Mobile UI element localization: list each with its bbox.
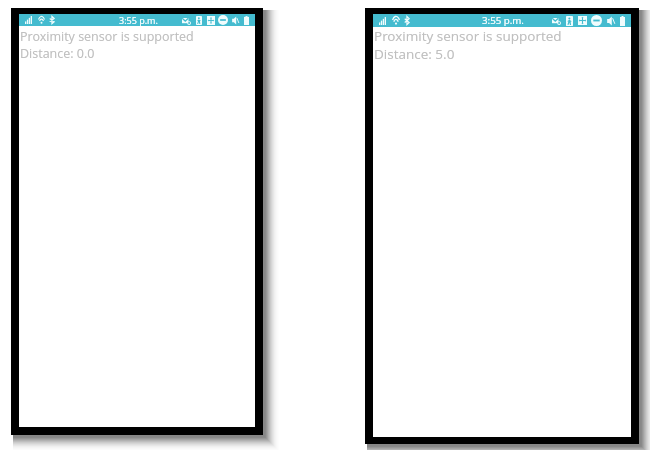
other: Mobile signal: [25, 16, 32, 24]
button[interactable]: Status bar: [19, 14, 255, 427]
other: Accessibility: [196, 16, 202, 25]
other: Screen mode: [578, 16, 587, 25]
staticText: Distance: 0.0: [20, 45, 95, 62]
other: Sound: [232, 16, 239, 25]
other: Sound: [607, 16, 615, 26]
other: Accessibility: [566, 16, 573, 26]
other: Battery: [244, 16, 249, 25]
staticText: Proximity sensor is supported: [374, 27, 562, 45]
other: Unread mail: [182, 16, 191, 25]
button[interactable]: Status bar: [19, 14, 255, 26]
other: Bluetooth: [49, 16, 55, 24]
other: Battery: [620, 16, 625, 26]
other: Wi-Fi: [38, 17, 45, 24]
staticText: 3:55 p.m.: [119, 14, 158, 26]
other: Bluetooth: [404, 16, 410, 25]
staticText: Distance: 5.0: [374, 45, 455, 63]
other: Do not disturb: [218, 15, 228, 25]
other: Wi-Fi: [392, 17, 400, 25]
button[interactable]: Status bar: [373, 14, 631, 437]
staticText: 3:55 p.m.: [482, 14, 524, 27]
other: Do not disturb: [591, 15, 602, 26]
other: Screen mode: [207, 16, 215, 25]
staticText: Proximity sensor is supported: [20, 28, 194, 45]
other: Mobile signal: [379, 17, 386, 25]
other: Unread mail: [552, 16, 561, 25]
button[interactable]: Status bar: [373, 14, 631, 27]
